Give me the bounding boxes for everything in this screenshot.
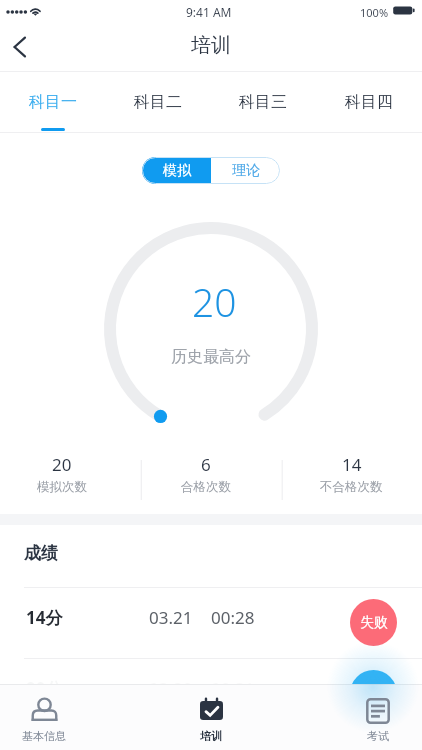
staticText: 基本信息 <box>22 729 66 743</box>
staticText: 9:41 AM <box>186 4 232 20</box>
staticText: 理论 <box>232 162 260 180</box>
staticText: 不合格次数 <box>320 479 383 495</box>
staticText: 00:31 <box>211 677 255 700</box>
staticText: 合格次数 <box>181 479 231 495</box>
staticText: 模拟次数 <box>37 479 87 495</box>
button[interactable]: 14分 <box>0 588 422 658</box>
staticText: 成绩 <box>24 543 58 564</box>
button[interactable]: 理论 <box>211 157 280 184</box>
button[interactable]: 20 <box>0 453 140 503</box>
staticText: 考试 <box>367 729 389 743</box>
button[interactable]: 考试 <box>348 685 408 750</box>
staticText: 科目一 <box>29 92 77 112</box>
staticText: 培训 <box>191 33 231 58</box>
staticText: 14分 <box>26 606 63 629</box>
staticText: 03.20 <box>149 677 193 700</box>
staticText: 03.21 <box>149 606 193 629</box>
button[interactable]: 培训 <box>181 685 241 750</box>
button[interactable]: 科目一 <box>0 72 105 133</box>
staticText: 科目四 <box>345 92 393 112</box>
button[interactable]: Back <box>0 28 38 66</box>
button[interactable]: 科目四 <box>316 72 422 133</box>
button[interactable]: 科目二 <box>105 72 210 133</box>
staticText: 20 <box>52 453 72 476</box>
button[interactable]: 90分 <box>0 659 422 729</box>
staticText: 培训 <box>200 729 222 743</box>
staticText: 历史最高分 <box>171 347 251 367</box>
button[interactable]: 模拟 <box>142 157 211 184</box>
staticText: 100% <box>360 5 389 20</box>
staticText: 00:28 <box>211 606 255 629</box>
staticText: 模拟 <box>163 162 191 180</box>
staticText: 20 <box>192 275 237 328</box>
staticText: 6 <box>201 453 211 476</box>
button[interactable]: 6 <box>140 453 281 503</box>
button[interactable]: 14 <box>281 453 422 503</box>
staticText: 14 <box>342 453 362 476</box>
staticText: 科目三 <box>239 92 287 112</box>
staticText: 90分 <box>26 677 63 700</box>
button[interactable]: 基本信息 <box>14 685 74 750</box>
staticText: 失败 <box>360 614 388 632</box>
button[interactable]: 科目三 <box>210 72 316 133</box>
staticText: 科目二 <box>134 92 182 112</box>
staticText: 合格 <box>360 685 388 703</box>
